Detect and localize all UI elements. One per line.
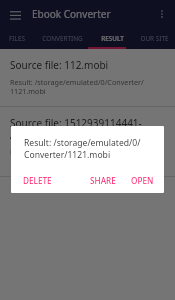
staticText: Ebook Converter (32, 7, 111, 21)
button[interactable]: Source file: 112.mobi (0, 49, 175, 106)
button[interactable]: OUR SITE (133, 28, 175, 49)
staticText: DELETE (23, 175, 52, 186)
staticText: Result: /storage/emulated/0/ Converter/1… (24, 137, 141, 161)
staticText: CONVERTING (42, 34, 83, 43)
staticText: FILES (9, 34, 25, 43)
staticText: Source file: 112.mobi (10, 58, 109, 72)
button[interactable]: RESULT (91, 28, 133, 49)
button[interactable]: OPEN (127, 172, 158, 189)
button[interactable] (0, 0, 175, 300)
button[interactable]: FILES (0, 28, 34, 49)
button[interactable]: DELETE (19, 172, 56, 189)
button[interactable]: SHARE (86, 172, 120, 189)
staticText: OPEN (131, 175, 154, 186)
button[interactable]: Source file: 1512939114441- AUTO1.fb2 (0, 107, 175, 176)
staticText: OUR SITE (140, 34, 169, 43)
staticText: Result: /storage/emulated/0/Converter/ 1… (10, 77, 144, 97)
staticText: SHARE (90, 175, 116, 186)
staticText: Source file: 1512939114441- AUTO1.fb2 (10, 116, 142, 142)
staticText: RESULT (101, 34, 124, 43)
button[interactable]: CONVERTING (34, 28, 91, 49)
staticText: Result: /storage/emulated/0/Converter/ 1… (10, 147, 144, 167)
button[interactable]: Open navigation drawer (6, 5, 24, 23)
button[interactable]: More options (153, 5, 171, 23)
